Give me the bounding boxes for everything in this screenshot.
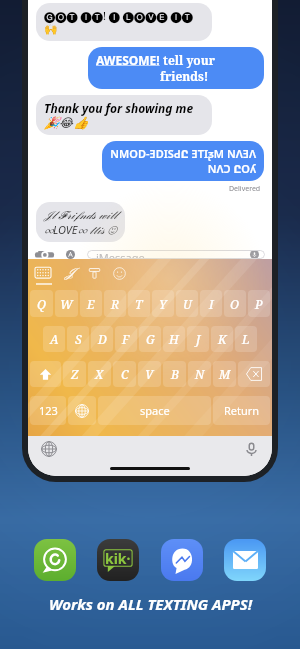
- button[interactable]: Return: [213, 396, 270, 425]
- staticText: K: [218, 331, 227, 347]
- button[interactable]: L: [235, 326, 257, 352]
- button[interactable]: WhatsApp: [34, 539, 76, 581]
- button[interactable]: D: [91, 326, 113, 352]
- staticText: Delivered: [229, 184, 261, 194]
- button[interactable]: Shift: [30, 361, 61, 387]
- button[interactable]: N: [188, 361, 211, 387]
- staticText: 𝒥𝓁 𝓕𝓇𝒾𝒻𝓃𝒹𝓈 𝓌𝒾𝓁𝓁 ∞LOVE∞ 𝓉𝓉𝒾𝓈 😍: [44, 207, 117, 237]
- button[interactable]: AWESOME!: [88, 47, 264, 89]
- staticText: S: [75, 331, 82, 347]
- button[interactable]: G: [139, 326, 161, 352]
- button[interactable]: Z: [63, 361, 86, 387]
- staticText: H: [169, 331, 179, 347]
- button[interactable]: U: [176, 290, 198, 317]
- button[interactable]: W: [55, 290, 78, 317]
- button[interactable]: H: [163, 326, 185, 352]
- button[interactable]: Q: [30, 290, 53, 317]
- button[interactable]: B: [163, 361, 186, 387]
- staticText: C: [121, 366, 129, 382]
- staticText: A: [50, 331, 59, 347]
- staticText: D: [98, 331, 107, 347]
- button[interactable]: 𝒥𝓁 𝓕𝓇𝒾𝒻𝓃𝒹𝓈 𝓌𝒾𝓁𝓁 ∞LOVE∞ 𝓉𝓉𝒾𝓈 😍: [36, 202, 125, 242]
- button[interactable]: A: [43, 326, 65, 352]
- button[interactable]: Keyboard: [35, 265, 51, 281]
- button[interactable]: Kik: [97, 539, 139, 581]
- staticText: J: [196, 331, 201, 347]
- staticText: Y: [159, 296, 167, 312]
- button[interactable]: Switch language: [68, 396, 96, 425]
- button[interactable]: iMessage: [87, 250, 265, 259]
- staticText: N: [195, 366, 205, 382]
- button[interactable]: C: [113, 361, 136, 387]
- staticText: X: [95, 366, 104, 382]
- button[interactable]: F: [115, 326, 137, 352]
- button[interactable]: E: [80, 290, 102, 317]
- button[interactable]: Camera: [35, 250, 54, 259]
- button[interactable]: 🅖🅞🅣 🅘🅣! 🅘 🅛🅞🅥🅔 🅘🅣🙌: [36, 3, 212, 41]
- button[interactable]: V: [138, 361, 161, 387]
- button[interactable]: App Store: [62, 250, 79, 259]
- button[interactable]: Backspace: [238, 361, 270, 387]
- staticText: M: [219, 366, 231, 382]
- button[interactable]: Dictation: [244, 442, 259, 457]
- button[interactable]: J: [187, 326, 209, 352]
- staticText: V: [145, 366, 154, 382]
- button[interactable]: 123: [30, 396, 66, 425]
- staticText: U: [183, 296, 192, 312]
- staticText: 🅖🅞🅣 🅘🅣! 🅘 🅛🅞🅥🅔 🅘🅣🙌: [44, 8, 204, 36]
- button[interactable]: R: [104, 290, 126, 317]
- button[interactable]: P: [248, 290, 270, 317]
- button[interactable]: Themes: [88, 267, 101, 280]
- button[interactable]: Dictate: [246, 250, 263, 259]
- staticText: B: [171, 366, 179, 382]
- staticText: I: [209, 296, 214, 312]
- button[interactable]: T: [128, 290, 150, 317]
- staticText: Z: [71, 366, 79, 382]
- staticText: L: [242, 331, 250, 347]
- staticText: T: [135, 296, 143, 312]
- button[interactable]: Fonts: [62, 266, 77, 281]
- staticText: NMOD-ƎDISԀԸ ƎTIᶚM NɅƎɅ NɅƆ ԸOʎ: [110, 146, 256, 176]
- button[interactable]: I: [200, 290, 222, 317]
- button[interactable]: Y: [152, 290, 174, 317]
- button[interactable]: K: [211, 326, 233, 352]
- button[interactable]: O: [224, 290, 246, 317]
- staticText: Return: [224, 403, 260, 418]
- button[interactable]: Messenger: [161, 539, 203, 581]
- button[interactable]: X: [88, 361, 111, 387]
- staticText: AWESOME!: [96, 52, 160, 68]
- staticText: R: [111, 296, 120, 312]
- staticText: P: [255, 296, 263, 312]
- button[interactable]: S: [67, 326, 89, 352]
- staticText: iMessage: [96, 250, 246, 259]
- staticText: space: [140, 403, 170, 418]
- staticText: W: [60, 296, 73, 312]
- button[interactable]: space: [98, 396, 211, 425]
- button[interactable]: M: [213, 361, 236, 387]
- staticText: O: [230, 296, 240, 312]
- staticText: F: [122, 331, 130, 347]
- button[interactable]: NMOD-ƎDISԀԸ ƎTIᶚM NɅƎɅ NɅƆ ԸOʎ: [102, 141, 264, 181]
- button[interactable]: Emoji: [113, 267, 126, 280]
- button[interactable]: Switch keyboard: [41, 441, 57, 457]
- staticText: Q: [37, 296, 47, 312]
- button[interactable]: Mail: [224, 539, 266, 581]
- staticText: Works on ALL TEXTING APPS!: [49, 594, 252, 614]
- button[interactable]: Thank you for showing me 🎉😂👍: [36, 95, 212, 135]
- staticText: G: [146, 331, 155, 347]
- staticText: 123: [39, 403, 58, 418]
- staticText: Thank you for showing me 🎉😂👍: [44, 100, 204, 130]
- staticText: tell your friends!: [160, 52, 256, 84]
- staticText: E: [87, 296, 95, 312]
- staticText: 𝒥: [65, 267, 74, 280]
- staticText: kik·: [105, 549, 131, 568]
